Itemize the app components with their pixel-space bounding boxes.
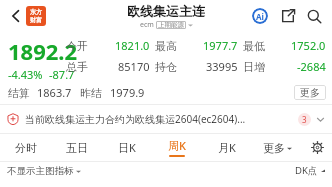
button[interactable]: East Money logo [26,6,46,26]
staticText: 1977.7 [203,38,238,53]
staticText: 欧线集运主连 [127,3,205,19]
button[interactable]: 不显示主图指标 [7,165,81,177]
staticText: 3 [302,114,307,125]
staticText: 1892.2 [8,36,78,66]
button[interactable]: Share [276,4,300,28]
staticText: 不显示主图指标 [7,165,74,177]
button[interactable]: 分时 [0,134,51,161]
button[interactable]: 更多 [294,85,326,100]
button[interactable]: 月K [202,134,252,161]
staticText: 五日 [66,141,88,155]
staticText: 今开 [66,39,88,53]
staticText: 周K [168,138,186,153]
button[interactable]: Settings [302,134,332,161]
staticText: -2684 [297,59,326,74]
staticText: 东方 [30,8,42,16]
staticText: 日K [118,140,136,155]
staticText: 更多 [263,141,285,155]
staticText: 分时 [15,141,37,155]
staticText: 33995 [206,59,238,74]
staticText: 昨结 [80,86,102,100]
staticText: 1821.0 [115,38,150,53]
button[interactable]: Search [302,4,326,28]
staticText: 85170 [118,59,150,74]
staticText: 1752.0 [291,38,326,53]
button[interactable]: 当前欧线集运主力合约为欧线集运2604(ec2604)... [0,105,332,133]
button[interactable]: 日K [102,134,152,161]
button[interactable]: AI assistant [248,4,272,28]
staticText: 财富 [30,16,42,24]
staticText: -87.7 [49,67,75,82]
button[interactable]: Back [4,4,28,28]
staticText: 1863.7 [37,85,72,100]
staticText: 1979.9 [110,85,145,100]
button[interactable]: DK点 [295,164,325,177]
button[interactable]: 欧线集运主连 [127,3,205,30]
staticText: 更多 [300,86,320,99]
staticText: 日增 [243,60,265,74]
staticText: Ai [256,11,264,22]
staticText: 结算 [8,86,30,100]
staticText: -4.43% [8,67,43,82]
button[interactable]: 更多 [252,134,302,161]
button[interactable]: 五日 [51,134,102,161]
staticText: 月K [218,140,236,155]
staticText: 最高 [155,39,177,53]
staticText: ecm [140,20,154,30]
staticText: 持仓 [155,60,177,74]
staticText: 上期能源 [158,21,184,29]
staticText: 总手 [66,60,88,74]
button[interactable]: 周K [152,134,202,161]
staticText: 最低 [243,39,265,53]
staticText: 当前欧线集运主力合约为欧线集运2604(ec2604)... [25,112,294,126]
staticText: DK点 [295,164,318,177]
